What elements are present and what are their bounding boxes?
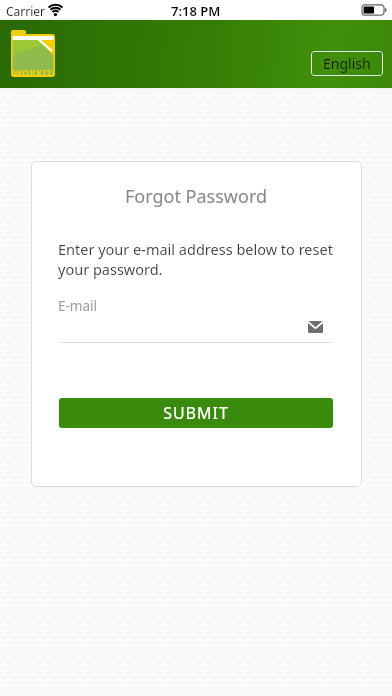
staticText: Enter your e-mail address below to reset… [58, 239, 333, 280]
staticText: 7:18 PM [171, 2, 221, 20]
staticText: Carrier [6, 3, 46, 19]
staticText: Forgot Password [125, 184, 268, 209]
button[interactable]: SUBMIT [59, 398, 333, 428]
staticText: WOKKIT [13, 66, 53, 78]
staticText: SUBMIT [163, 402, 229, 424]
staticText: E-mail [58, 297, 98, 315]
button[interactable]: English [311, 51, 383, 76]
staticText: English [323, 54, 371, 73]
